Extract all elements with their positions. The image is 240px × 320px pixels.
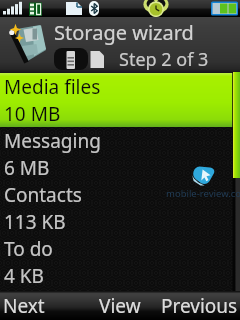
staticText: Storage wizard [54,19,194,46]
button[interactable]: Previous [160,291,240,320]
staticText: 113 KB [4,209,66,235]
staticText: 4 KB [4,263,44,289]
button[interactable]: View [80,291,160,320]
staticText: mobile-review.com [166,187,240,200]
staticText: 10 MB [4,101,61,127]
staticText: Messaging [4,128,101,154]
staticText: To do [4,236,53,262]
button[interactable]: Next [0,291,80,320]
staticText: Previous [161,293,238,319]
staticText: Next [3,293,45,319]
button[interactable]: Messaging [0,127,240,181]
staticText: 6 MB [4,155,50,181]
staticText: Step 2 of 3 [119,47,209,72]
button[interactable]: To do [0,235,240,289]
staticText: View [99,293,141,319]
button[interactable]: Media files [0,73,240,127]
staticText: Contacts [4,182,82,208]
button[interactable]: Contacts [0,181,240,235]
staticText: Media files [4,74,101,100]
